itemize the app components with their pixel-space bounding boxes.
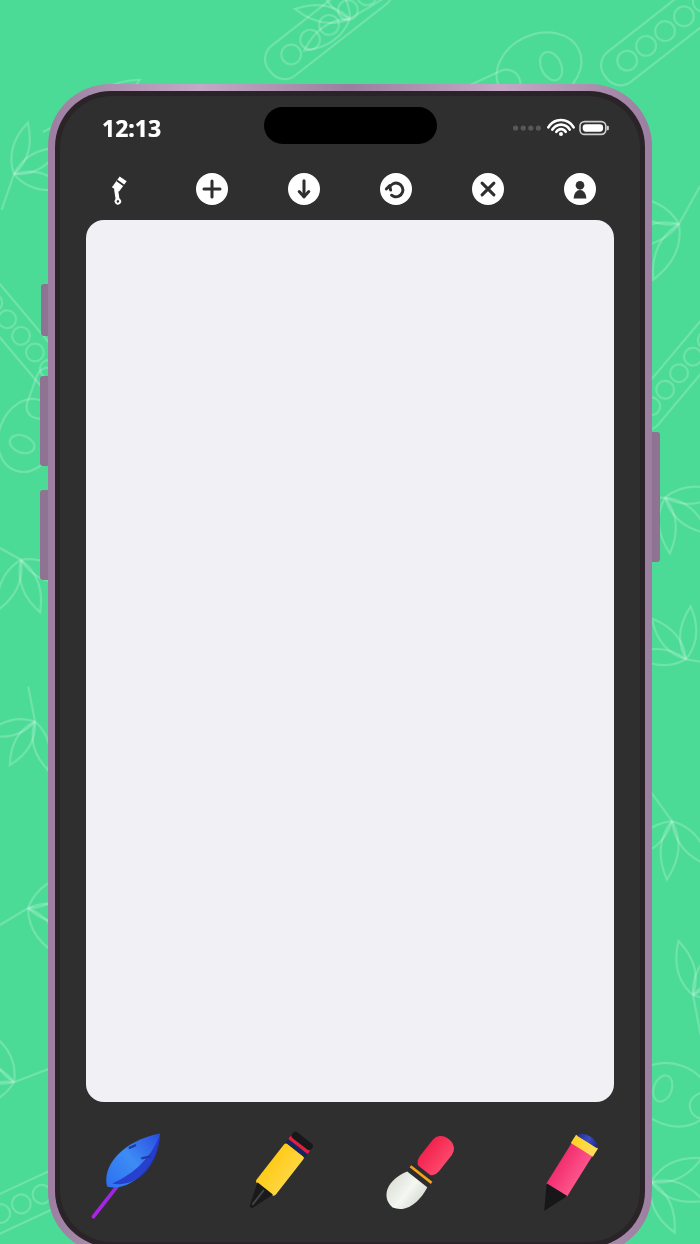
button[interactable]: Brush settings [74, 158, 166, 220]
button[interactable]: Download [258, 158, 350, 220]
button[interactable]: Profile [534, 158, 626, 220]
button[interactable]: Feather pen [60, 1102, 205, 1242]
other: Silent switch [41, 284, 51, 336]
button[interactable]: Add [166, 158, 258, 220]
button[interactable]: Marker pen [205, 1102, 350, 1242]
other: Power [649, 432, 660, 562]
other: Volume down [40, 490, 51, 580]
other: Volume up [40, 376, 51, 466]
button[interactable]: Close [442, 158, 534, 220]
button[interactable]: Undo [350, 158, 442, 220]
button[interactable] [86, 220, 614, 1102]
staticText: 12:13 [102, 112, 162, 143]
button[interactable]: Paint brush [350, 1102, 495, 1242]
button[interactable]: Pencil [495, 1102, 640, 1242]
